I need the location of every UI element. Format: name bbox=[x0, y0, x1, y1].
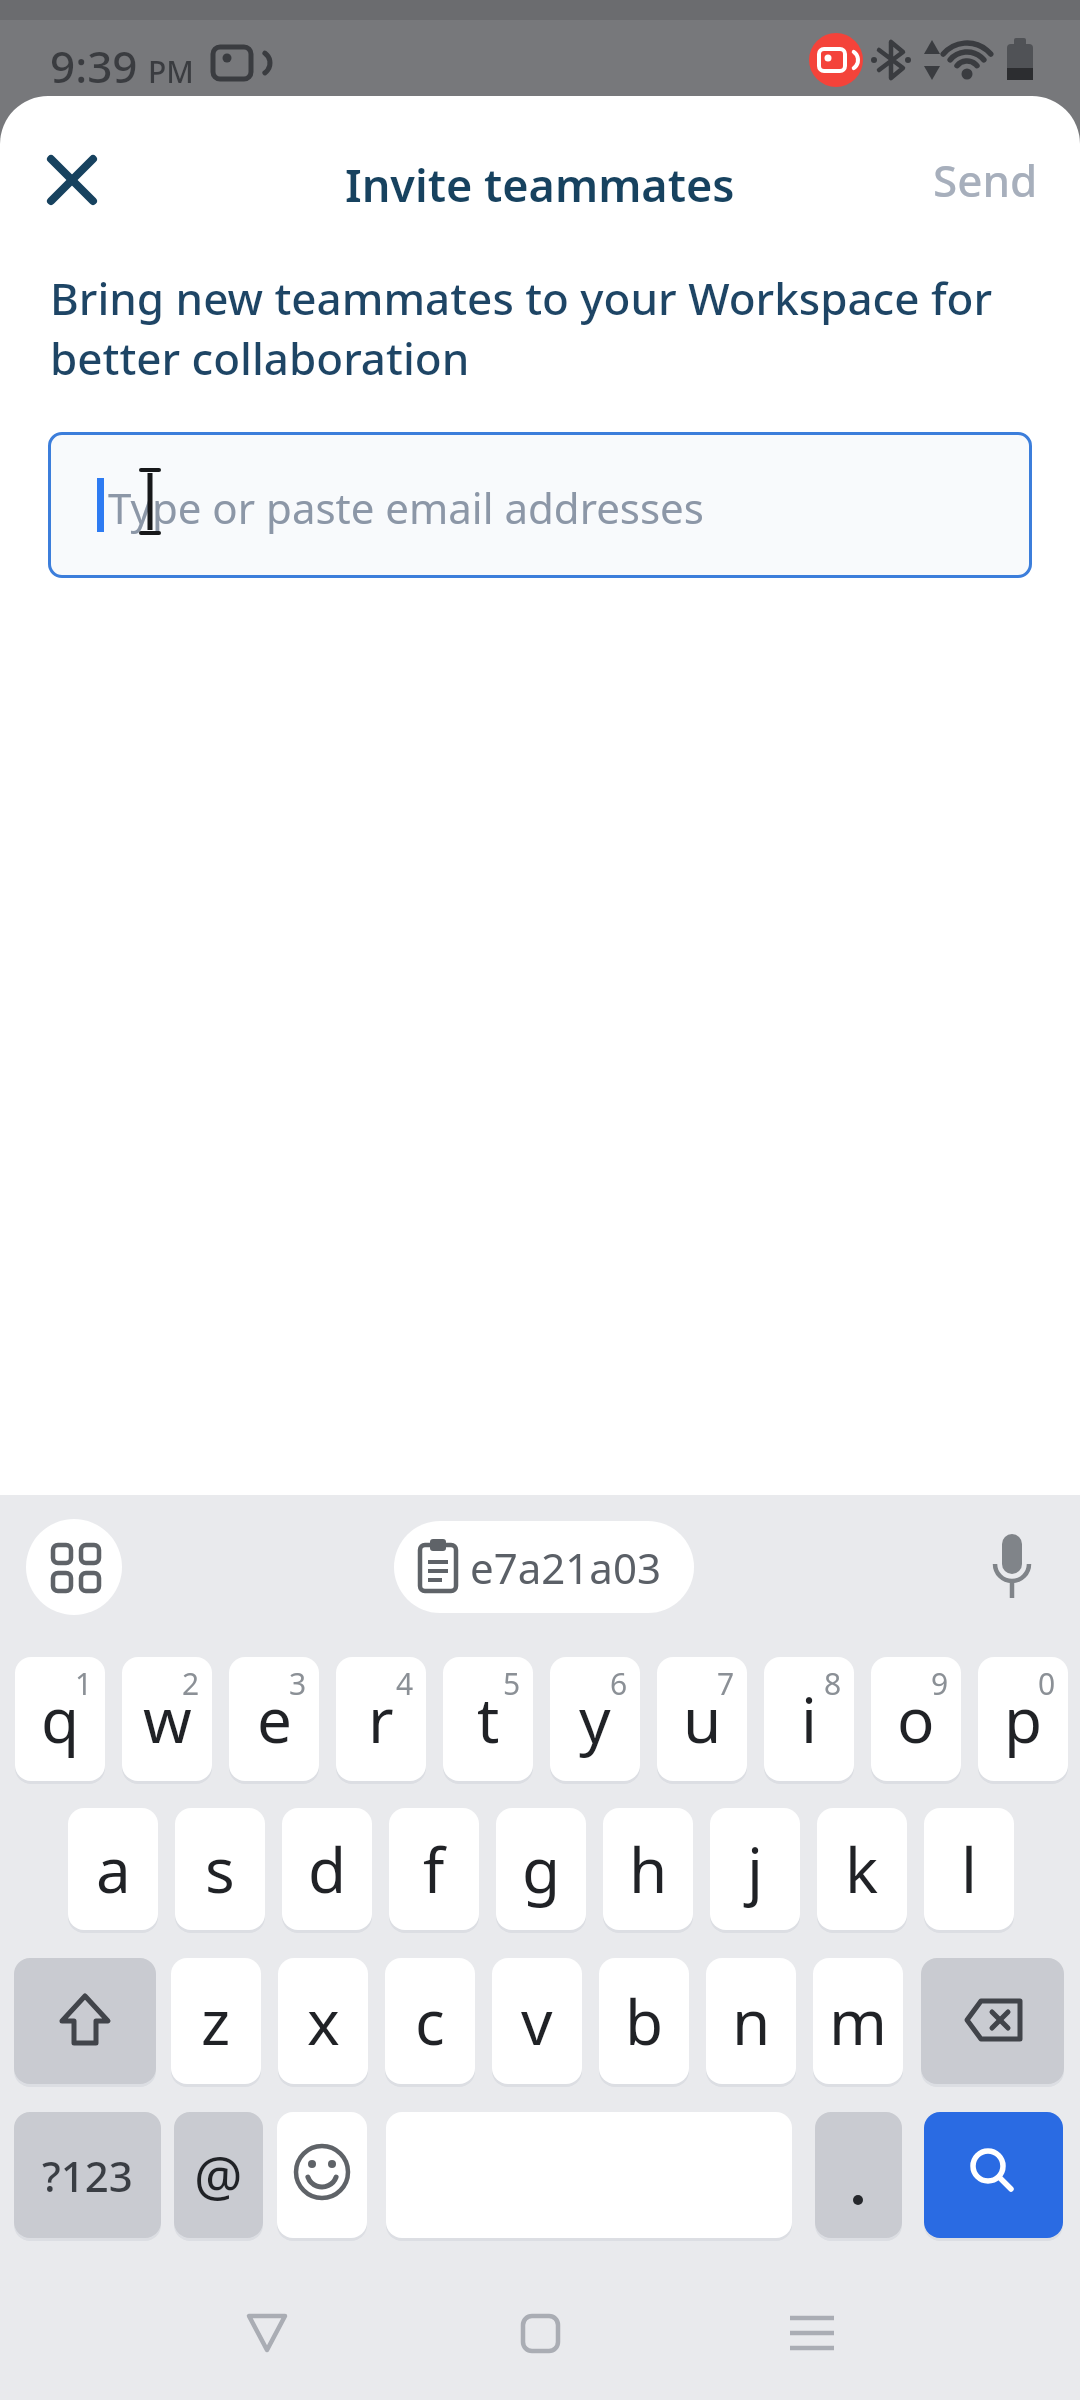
staticText: 9:39 bbox=[50, 36, 138, 96]
staticText: k bbox=[845, 1827, 879, 1911]
staticText: Invite teammates bbox=[345, 154, 735, 215]
staticText: Send bbox=[933, 150, 1038, 210]
staticText: q bbox=[41, 1677, 80, 1761]
staticText: 8 bbox=[824, 1663, 842, 1704]
button[interactable]: b bbox=[599, 1958, 689, 2084]
button[interactable]: Send bbox=[920, 144, 1050, 216]
staticText: Bring new teammates to your Workspace fo… bbox=[50, 268, 993, 388]
staticText: v bbox=[521, 1979, 553, 2063]
button[interactable]: w bbox=[122, 1657, 212, 1781]
staticText: x bbox=[307, 1979, 340, 2063]
button[interactable] bbox=[36, 144, 108, 216]
button[interactable]: x bbox=[278, 1958, 368, 2084]
button[interactable]: q bbox=[15, 1657, 105, 1781]
button[interactable]: l bbox=[924, 1808, 1014, 1930]
staticText: u bbox=[683, 1677, 722, 1761]
button[interactable] bbox=[764, 2285, 860, 2381]
button[interactable]: t bbox=[443, 1657, 533, 1781]
staticText: f bbox=[423, 1827, 445, 1911]
staticText: b bbox=[625, 1979, 664, 2063]
button[interactable]: @ bbox=[174, 2112, 263, 2238]
button[interactable]: Type or paste email addresses bbox=[48, 432, 1032, 578]
button[interactable]: z bbox=[171, 1958, 261, 2084]
button[interactable]: e7a21a03 bbox=[394, 1521, 694, 1613]
staticText: a bbox=[96, 1827, 131, 1911]
staticText: h bbox=[629, 1827, 668, 1911]
staticText: w bbox=[143, 1677, 192, 1761]
button[interactable]: v bbox=[492, 1958, 582, 2084]
button[interactable]: p bbox=[978, 1657, 1068, 1781]
staticText: n bbox=[732, 1979, 771, 2063]
staticText: Type or paste email addresses bbox=[108, 479, 704, 536]
button[interactable]: h bbox=[603, 1808, 693, 1930]
button[interactable]: f bbox=[389, 1808, 479, 1930]
staticText: i bbox=[801, 1677, 817, 1761]
staticText: 3 bbox=[289, 1663, 307, 1704]
staticText: t bbox=[477, 1677, 500, 1761]
button[interactable]: o bbox=[871, 1657, 961, 1781]
button[interactable] bbox=[815, 2112, 902, 2238]
staticText: @ bbox=[194, 2138, 243, 2212]
button[interactable]: d bbox=[282, 1808, 372, 1930]
staticText: r bbox=[368, 1677, 394, 1761]
button[interactable]: e bbox=[229, 1657, 319, 1781]
staticText: y bbox=[579, 1677, 611, 1761]
button[interactable]: c bbox=[385, 1958, 475, 2084]
staticText: 6 bbox=[610, 1663, 628, 1704]
staticText: p bbox=[1004, 1677, 1043, 1761]
button[interactable]: n bbox=[706, 1958, 796, 2084]
button[interactable] bbox=[921, 1958, 1064, 2084]
staticText: e7a21a03 bbox=[470, 1539, 661, 1596]
staticText: o bbox=[897, 1677, 935, 1761]
button[interactable] bbox=[219, 2285, 315, 2381]
staticText: 5 bbox=[503, 1663, 521, 1704]
staticText: d bbox=[308, 1827, 347, 1911]
staticText: 9 bbox=[931, 1663, 949, 1704]
staticText: m bbox=[829, 1979, 887, 2063]
button[interactable]: s bbox=[175, 1808, 265, 1930]
button[interactable]: k bbox=[817, 1808, 907, 1930]
staticText: l bbox=[961, 1827, 977, 1911]
button[interactable]: i bbox=[764, 1657, 854, 1781]
button[interactable]: ?123 bbox=[14, 2112, 161, 2238]
button[interactable]: y bbox=[550, 1657, 640, 1781]
button[interactable] bbox=[277, 2112, 367, 2238]
staticText: g bbox=[522, 1827, 561, 1911]
staticText: 7 bbox=[717, 1663, 735, 1704]
button[interactable] bbox=[14, 1958, 156, 2084]
button[interactable]: u bbox=[657, 1657, 747, 1781]
staticText: s bbox=[205, 1827, 235, 1911]
staticText: c bbox=[415, 1979, 445, 2063]
staticText: ?123 bbox=[42, 2147, 133, 2204]
staticText: PM bbox=[148, 51, 194, 92]
staticText: 2 bbox=[182, 1663, 200, 1704]
staticText: 4 bbox=[396, 1663, 414, 1704]
button[interactable]: a bbox=[68, 1808, 158, 1930]
staticText: z bbox=[201, 1979, 231, 2063]
button[interactable]: j bbox=[710, 1808, 800, 1930]
button[interactable] bbox=[26, 1519, 122, 1615]
staticText: 0 bbox=[1038, 1663, 1056, 1704]
staticText: e bbox=[257, 1677, 292, 1761]
staticText: 1 bbox=[75, 1663, 93, 1704]
staticText: j bbox=[747, 1827, 763, 1911]
button[interactable] bbox=[924, 2112, 1063, 2238]
button[interactable]: r bbox=[336, 1657, 426, 1781]
button[interactable]: m bbox=[813, 1958, 903, 2084]
button[interactable]: g bbox=[496, 1808, 586, 1930]
button[interactable] bbox=[492, 2285, 588, 2381]
